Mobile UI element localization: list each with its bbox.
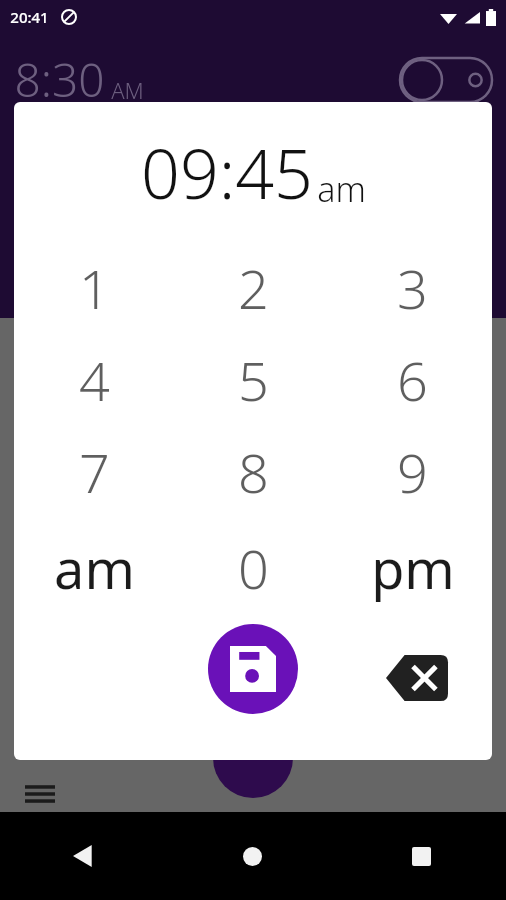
staticText: 9 <box>397 435 428 509</box>
button[interactable]: 3 <box>333 242 492 334</box>
staticText: 4 <box>79 343 110 417</box>
button[interactable]: 1 <box>14 242 174 334</box>
button[interactable]: 8 <box>174 426 333 518</box>
button[interactable]: 9 <box>333 426 492 518</box>
staticText: 1 <box>79 251 110 325</box>
button[interactable]: Home <box>168 812 337 900</box>
staticText: AM <box>111 75 144 105</box>
staticText: am <box>54 531 135 605</box>
staticText: 8 <box>238 435 269 509</box>
button[interactable]: 4 <box>14 334 174 426</box>
staticText: 3 <box>397 251 428 325</box>
staticText: 6 <box>397 343 428 417</box>
button[interactable]: Save <box>208 624 298 714</box>
button[interactable]: 2 <box>174 242 333 334</box>
staticText: 7 <box>79 435 110 509</box>
button[interactable]: Menu <box>18 772 62 816</box>
button[interactable]: Recents <box>337 812 506 900</box>
button[interactable]: 6 <box>333 334 492 426</box>
button[interactable]: Backspace <box>384 645 450 711</box>
button[interactable]: 7 <box>14 426 174 518</box>
button[interactable]: am <box>14 518 174 618</box>
button[interactable]: Back <box>0 812 168 900</box>
staticText: pm <box>371 531 455 605</box>
button[interactable]: 0 <box>174 518 333 618</box>
staticText: 8:30 <box>14 48 105 111</box>
staticText: 2 <box>238 251 269 325</box>
button[interactable]: pm <box>333 518 492 618</box>
staticText: 09:45 <box>141 126 313 219</box>
staticText: 20:41 <box>10 7 49 27</box>
staticText: 5 <box>238 343 269 417</box>
staticText: am <box>317 166 366 212</box>
staticText: 0 <box>238 531 269 605</box>
button[interactable]: 5 <box>174 334 333 426</box>
